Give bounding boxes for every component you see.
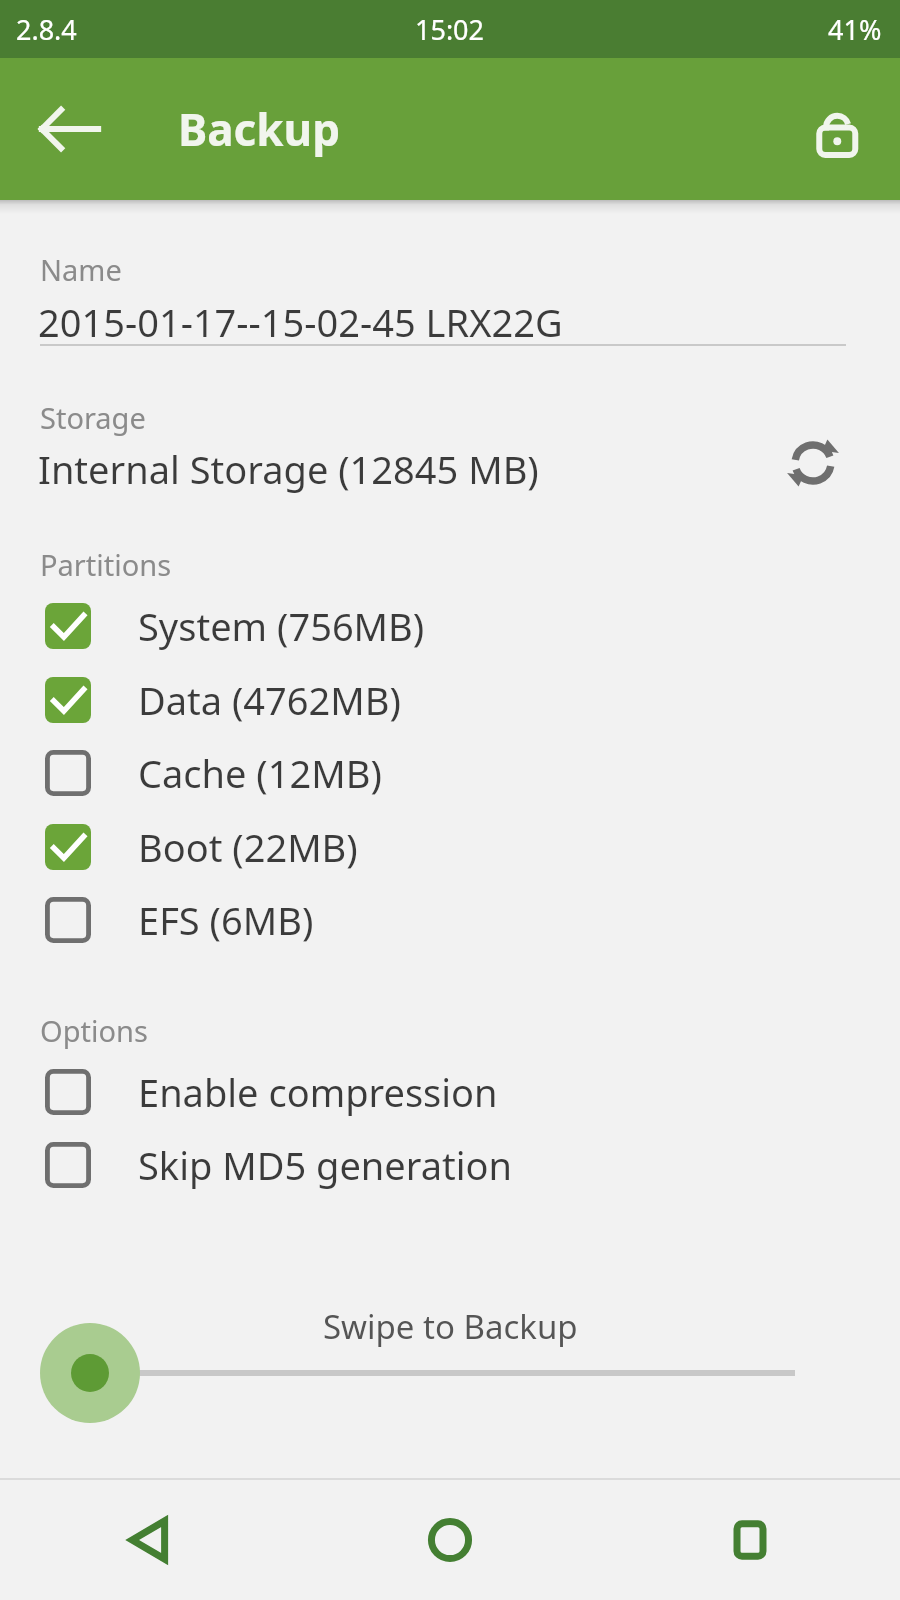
staticText: Data (4762MB)	[138, 674, 401, 726]
button[interactable]: Boot (22MB)	[0, 813, 900, 881]
staticText: 41%	[828, 11, 882, 48]
staticText: Skip MD5 generation	[138, 1139, 512, 1191]
staticText: Cache (12MB)	[138, 747, 382, 799]
staticText: Partitions	[40, 545, 172, 584]
staticText: EFS (6MB)	[138, 894, 314, 946]
staticText: Backup	[178, 99, 341, 159]
button[interactable]: Enable compression	[0, 1058, 900, 1126]
staticText: Swipe to Backup	[323, 1304, 578, 1349]
button[interactable]: Navigate up	[38, 97, 102, 161]
button[interactable]: Cache (12MB)	[0, 739, 900, 807]
button[interactable]: EFS (6MB)	[0, 886, 900, 954]
staticText: Internal Storage (12845 MB)	[38, 443, 539, 495]
button[interactable]: Recent apps	[600, 1480, 900, 1600]
staticText: Boot (22MB)	[138, 821, 358, 873]
staticText: 2.8.4	[16, 11, 77, 48]
staticText: 2015-01-17--15-02-45 LRX22G	[38, 296, 563, 348]
button[interactable]: System (756MB)	[0, 592, 900, 660]
button[interactable]: Refresh storage list	[782, 432, 844, 494]
staticText: Enable compression	[138, 1066, 498, 1118]
button[interactable]: Back	[0, 1480, 300, 1600]
button[interactable]: Skip MD5 generation	[0, 1131, 900, 1199]
button[interactable]: Home	[300, 1480, 600, 1600]
staticText: System (756MB)	[138, 600, 425, 652]
staticText: Storage	[40, 398, 146, 437]
button[interactable]: Swipe to Backup	[0, 1288, 900, 1408]
staticText: Name	[40, 250, 122, 289]
staticText: Options	[40, 1011, 148, 1050]
button[interactable]: Unlock	[802, 93, 874, 165]
staticText: 15:02	[415, 11, 485, 48]
button[interactable]: Data (4762MB)	[0, 666, 900, 734]
